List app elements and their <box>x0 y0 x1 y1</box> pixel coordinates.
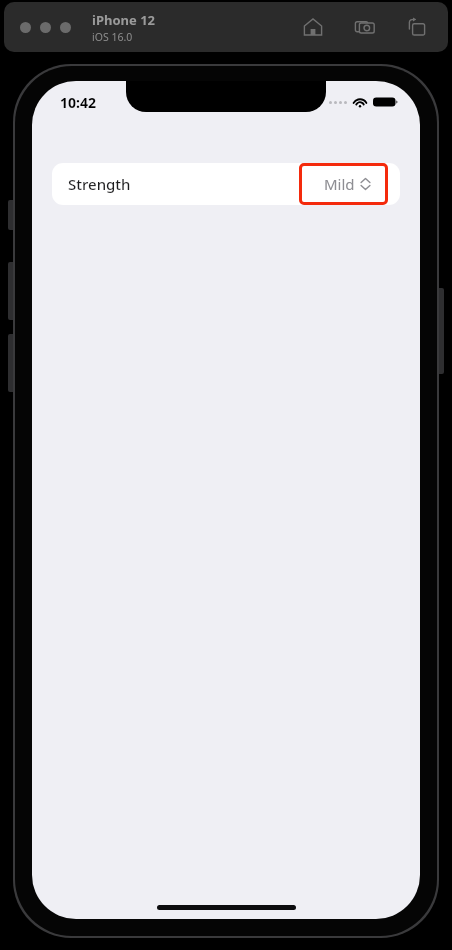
button[interactable]: Screenshot <box>352 14 378 40</box>
button[interactable] <box>60 22 71 33</box>
staticText: Strength <box>68 174 131 194</box>
staticText: Mild <box>324 174 355 194</box>
staticText: 10:42 <box>60 93 96 112</box>
staticText: iOS 16.0 <box>92 30 133 44</box>
button[interactable]: Home <box>300 14 326 40</box>
button[interactable]: Strength <box>52 163 400 205</box>
button[interactable] <box>40 22 51 33</box>
button[interactable]: Mild <box>299 163 388 205</box>
button[interactable] <box>20 22 31 33</box>
staticText: iPhone 12 <box>92 11 155 29</box>
button[interactable]: Rotate <box>404 14 430 40</box>
